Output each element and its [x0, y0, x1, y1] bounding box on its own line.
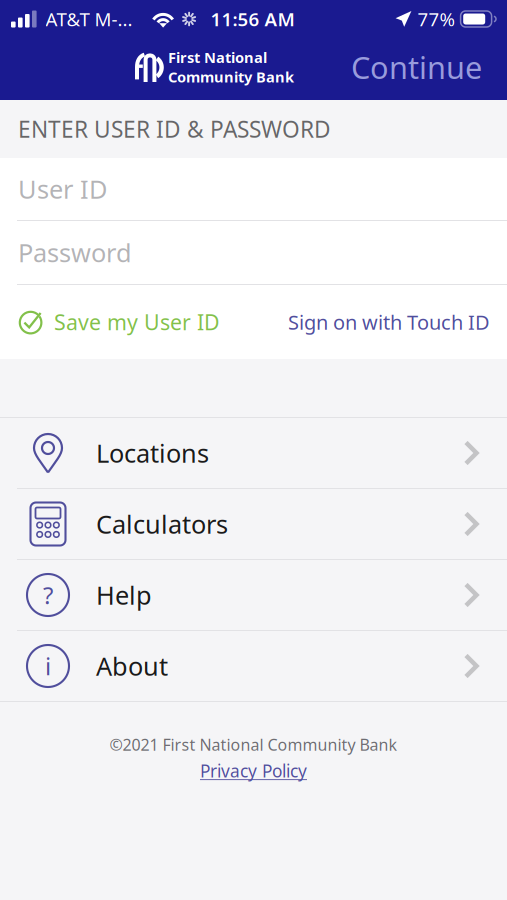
button[interactable]: Sign on with Touch ID	[288, 299, 490, 345]
button[interactable]: i	[0, 631, 507, 701]
staticText: AT&T M-...	[46, 7, 133, 31]
staticText: Save my User ID	[54, 308, 220, 336]
staticText: About	[96, 649, 168, 683]
staticText: Sign on with Touch ID	[288, 309, 490, 335]
staticText: User ID	[18, 172, 107, 206]
staticText: Locations	[96, 436, 209, 470]
staticText: Help	[96, 578, 152, 612]
staticText: ©2021 First National Community Bank	[109, 734, 397, 755]
staticText: ?	[43, 579, 53, 611]
staticText: i	[45, 650, 51, 682]
button[interactable]: Calculators	[0, 489, 507, 559]
staticText: Calculators	[96, 507, 228, 541]
staticText: Continue	[351, 47, 482, 87]
staticText: ENTER USER ID & PASSWORD	[18, 114, 331, 144]
button[interactable]: Privacy Policy	[200, 759, 307, 782]
staticText: Password	[18, 236, 132, 269]
staticText: 11:56 AM	[211, 7, 295, 31]
staticText: 77%	[418, 7, 456, 31]
staticText: First National	[168, 47, 267, 67]
button[interactable]: Continue	[351, 37, 507, 97]
button[interactable]: Save my User ID	[19, 298, 220, 346]
staticText: Community Bank	[168, 67, 294, 86]
button[interactable]: ?	[0, 560, 507, 630]
button[interactable]: Locations	[0, 418, 507, 488]
staticText: Privacy Policy	[200, 759, 307, 782]
